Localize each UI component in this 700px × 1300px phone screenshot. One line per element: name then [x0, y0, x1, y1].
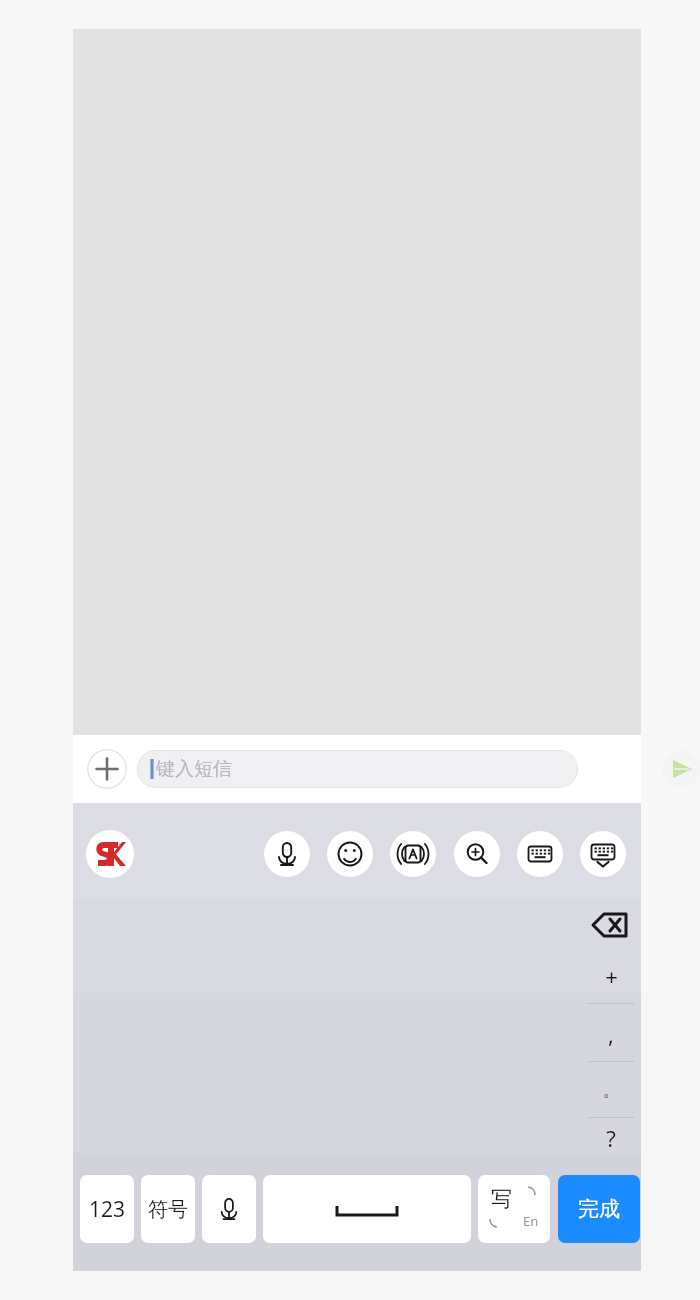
- staticText: 写: [491, 1186, 512, 1212]
- button[interactable]: 123: [80, 1175, 134, 1243]
- button[interactable]: Add attachment: [87, 749, 127, 789]
- staticText: 完成: [578, 1196, 620, 1222]
- button[interactable]: Emoji: [327, 831, 373, 877]
- button[interactable]: Voice input: [264, 831, 310, 877]
- button[interactable]: 符号: [141, 1175, 195, 1243]
- staticText: En: [523, 1212, 539, 1230]
- staticText: +: [605, 961, 618, 991]
- button[interactable]: Backspace: [581, 898, 641, 952]
- button[interactable]: +: [581, 949, 641, 1003]
- button[interactable]: Sogou input settings: [86, 830, 134, 878]
- button[interactable]: Hide keyboard: [580, 831, 626, 877]
- staticText: 123: [89, 1195, 126, 1224]
- button[interactable]: Voice input: [202, 1175, 256, 1243]
- staticText: ?: [606, 1123, 616, 1153]
- staticText: ,: [608, 1019, 614, 1049]
- staticText: 符号: [148, 1197, 188, 1222]
- staticText: 。: [603, 1080, 620, 1101]
- staticText: 键入短信: [156, 757, 232, 781]
- button[interactable]: Space: [263, 1175, 471, 1243]
- button[interactable]: ?: [581, 1111, 641, 1165]
- button[interactable]: 完成: [558, 1175, 640, 1243]
- button[interactable]: Handwriting English: [478, 1175, 550, 1243]
- button[interactable]: Search: [454, 831, 500, 877]
- button[interactable]: Keyboard layout: [517, 831, 563, 877]
- button[interactable]: ,: [581, 1007, 641, 1061]
- button[interactable]: Send: [662, 750, 700, 788]
- button[interactable]: 键入短信: [137, 750, 578, 788]
- button[interactable]: Translate: [390, 831, 436, 877]
- button[interactable]: 。: [581, 1063, 641, 1117]
